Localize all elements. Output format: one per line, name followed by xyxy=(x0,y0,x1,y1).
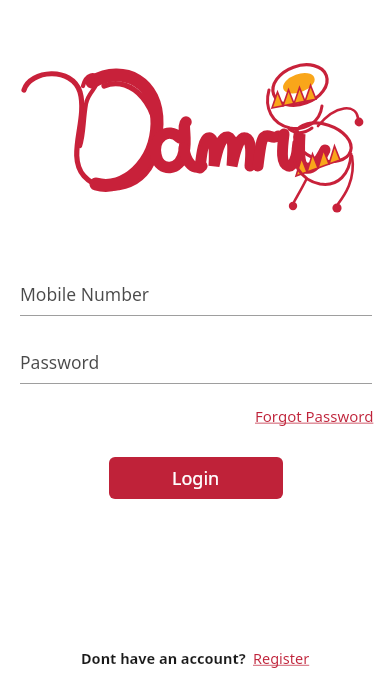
button[interactable]: Forgot Password xyxy=(253,404,376,428)
staticText: Register xyxy=(253,648,310,668)
button[interactable]: Password xyxy=(20,350,372,384)
staticText: Dont have an account? xyxy=(81,648,246,668)
staticText: Mobile Number xyxy=(20,282,150,306)
staticText: Forgot Password xyxy=(255,406,374,426)
staticText: Login xyxy=(172,466,220,491)
staticText: Password xyxy=(20,350,100,374)
button[interactable]: Login xyxy=(109,457,283,499)
button[interactable]: Register xyxy=(252,646,311,670)
button[interactable]: Mobile Number xyxy=(20,282,372,316)
